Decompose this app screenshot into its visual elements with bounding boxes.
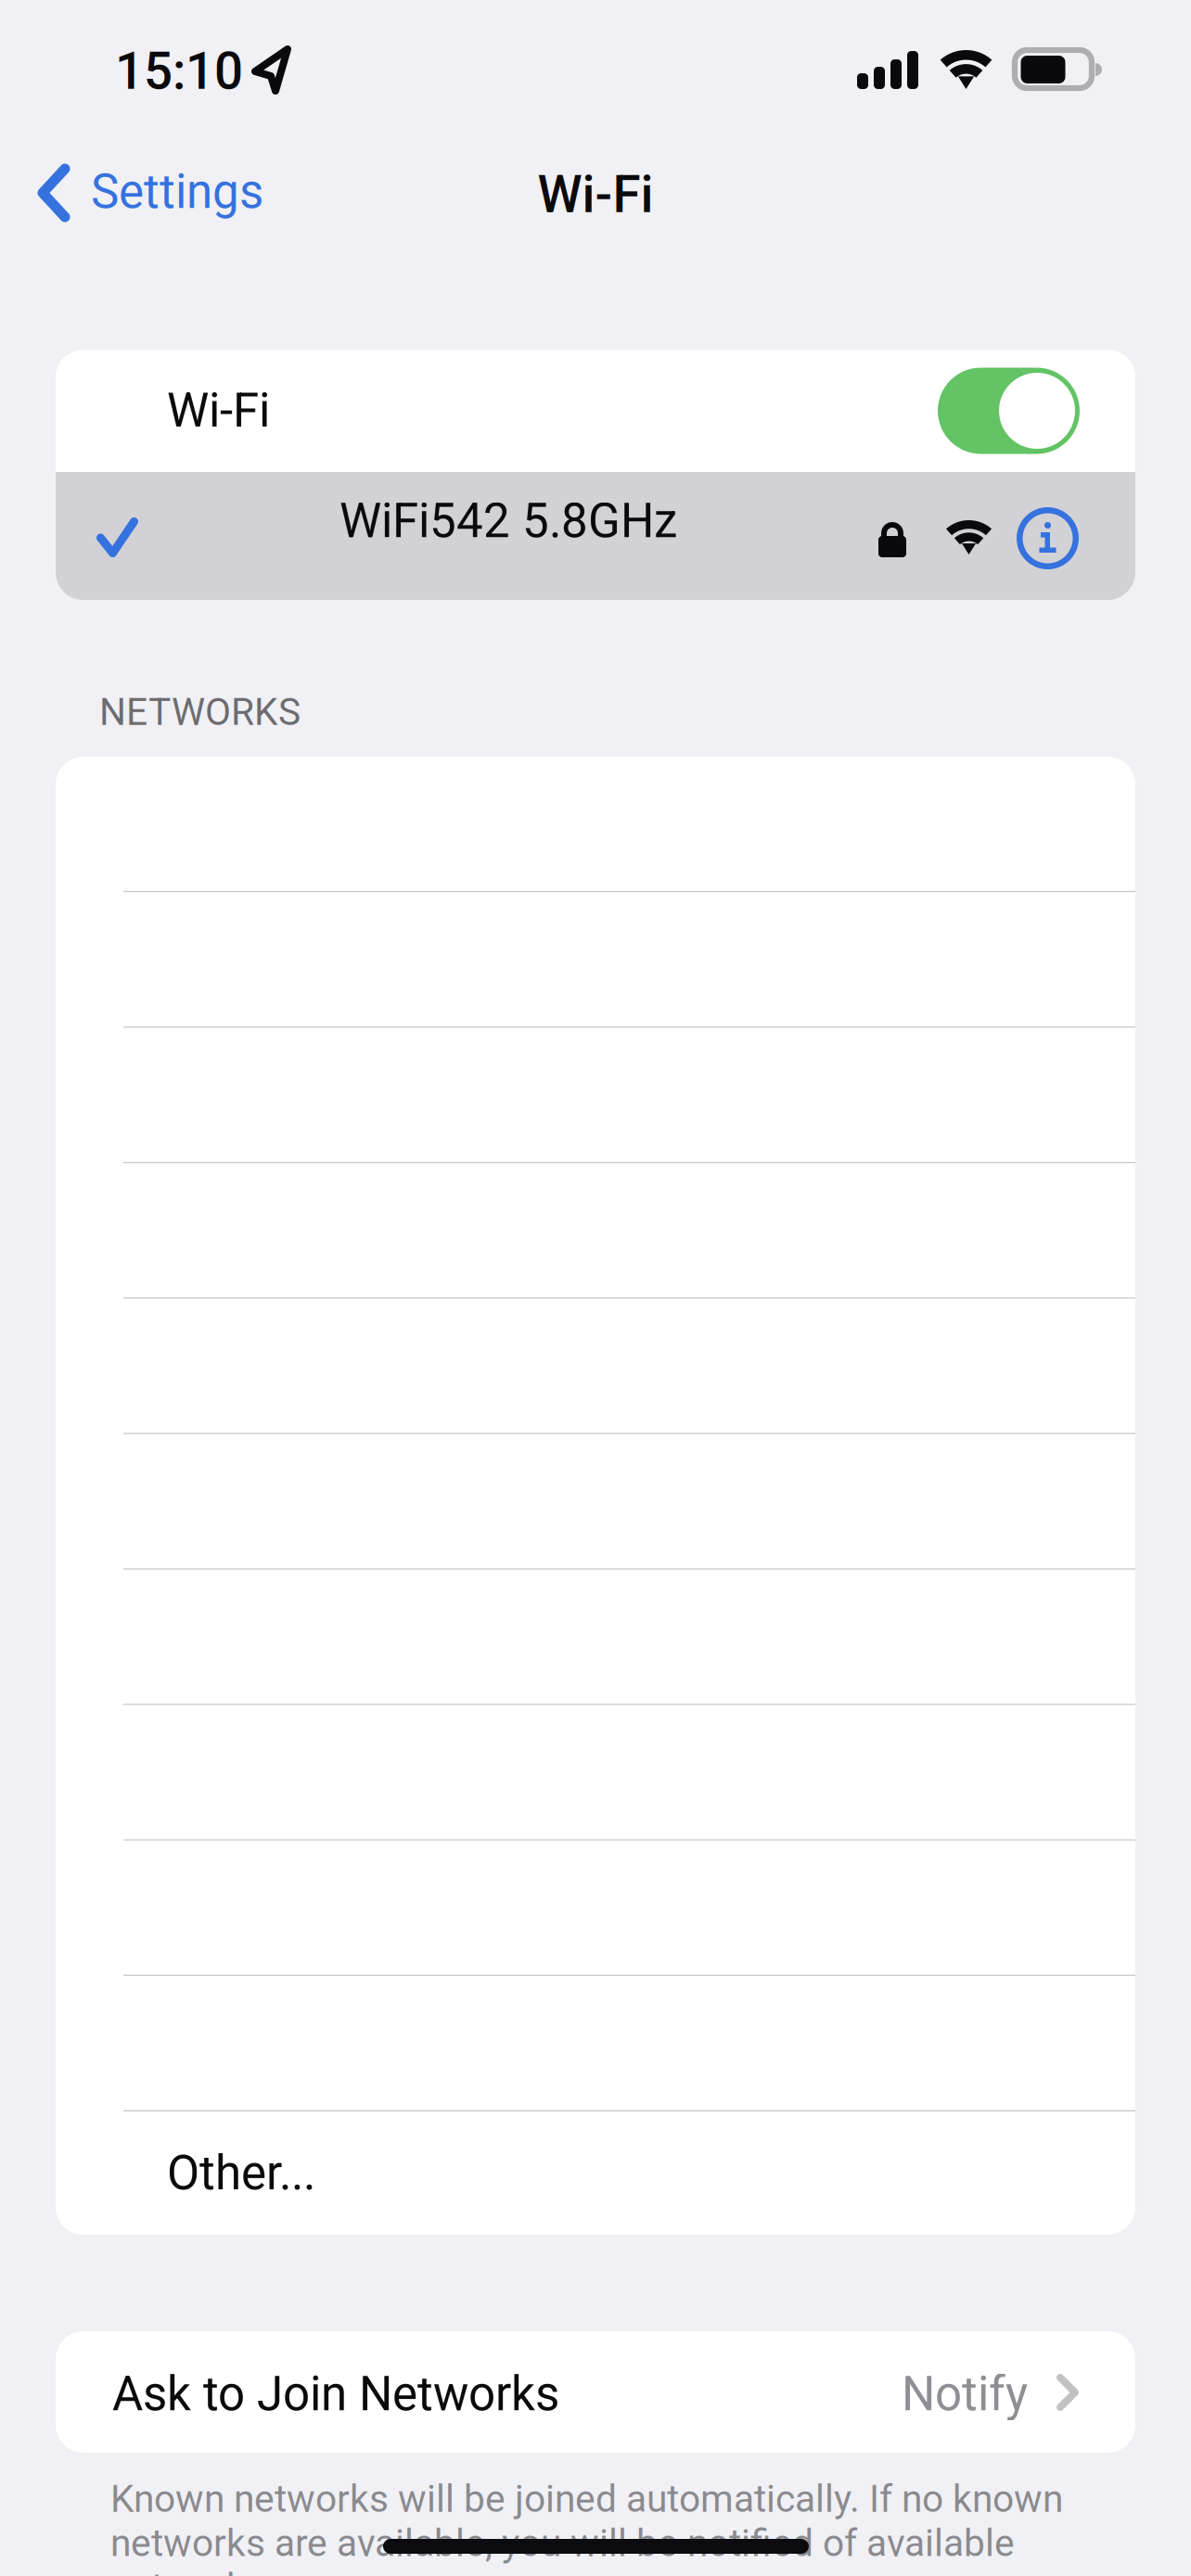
button[interactable]: Settings <box>0 148 306 241</box>
staticText: Notify <box>902 2366 1028 2422</box>
button[interactable]: WiFi542 5.8GHz <box>56 472 1135 600</box>
staticText: Wi-Fi <box>538 165 653 224</box>
staticText: NETWORKS <box>99 690 301 734</box>
button[interactable]: Ask to Join Networks <box>56 2331 1135 2453</box>
staticText: Settings <box>91 164 263 220</box>
staticText: Other... <box>167 2145 315 2201</box>
staticText: Known networks will be joined automatica… <box>110 2477 1063 2576</box>
staticText: Ask to Join Networks <box>112 2366 559 2422</box>
staticText: 15:10 <box>115 42 243 101</box>
staticText: WiFi542 5.8GHz <box>339 493 677 549</box>
button[interactable]: Wi-Fi <box>56 350 1135 472</box>
button[interactable]: Other... <box>56 2111 1135 2235</box>
staticText: Wi-Fi <box>167 383 270 439</box>
